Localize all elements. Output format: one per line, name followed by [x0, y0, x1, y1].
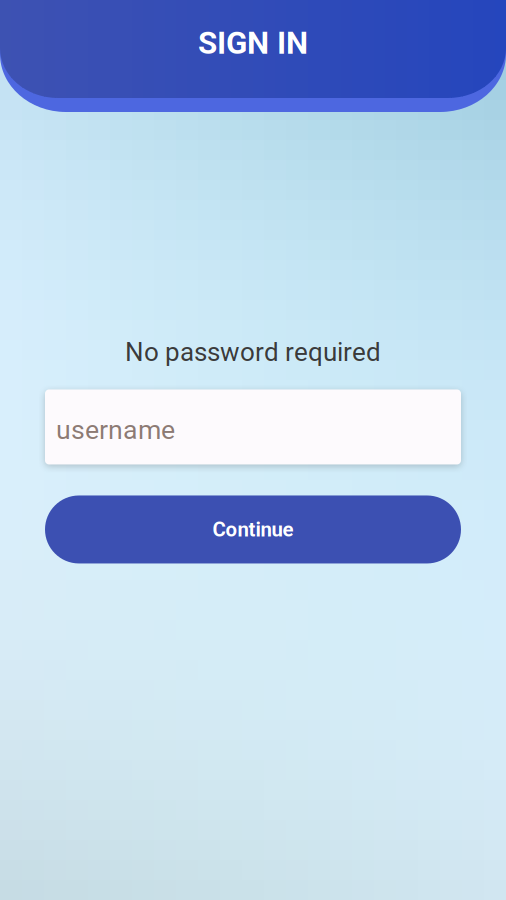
staticText: Continue [212, 517, 293, 541]
staticText: username [56, 414, 175, 446]
staticText: SIGN IN [198, 25, 308, 61]
staticText: No password required [125, 337, 381, 367]
button[interactable]: Continue [0, 495, 506, 563]
